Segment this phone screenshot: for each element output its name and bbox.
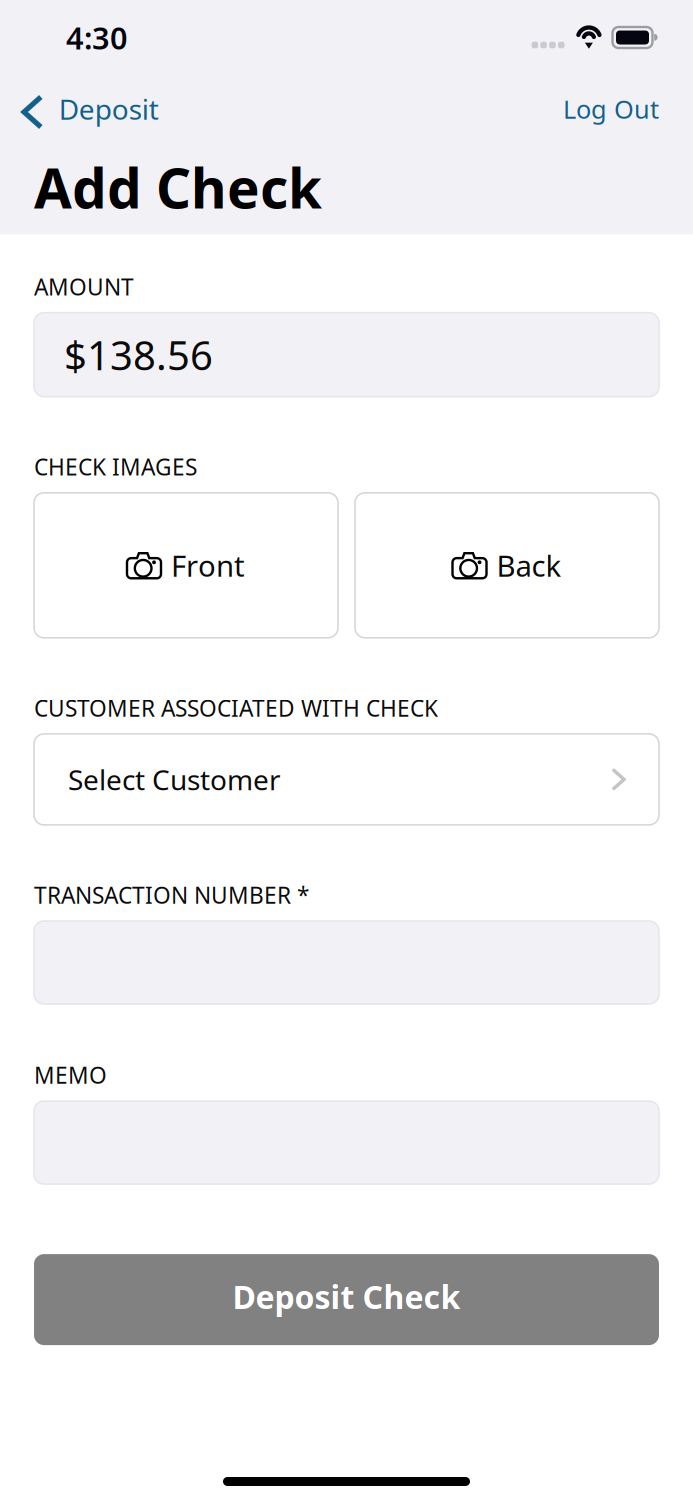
staticText: $138.56	[64, 328, 213, 381]
button[interactable]: Log Out	[563, 86, 693, 138]
staticText: Deposit Check	[232, 1275, 460, 1318]
staticText: Deposit	[59, 90, 159, 128]
staticText: MEMO	[34, 1060, 107, 1090]
staticText: Back	[496, 546, 561, 585]
staticText: Front	[171, 546, 245, 585]
staticText: CUSTOMER ASSOCIATED WITH CHECK	[34, 693, 438, 723]
button[interactable]: Select Customer	[34, 734, 659, 825]
staticText: TRANSACTION NUMBER *	[34, 880, 309, 910]
button[interactable]: Front	[34, 493, 338, 638]
button[interactable]: Deposit	[0, 84, 159, 140]
staticText: CHECK IMAGES	[34, 452, 197, 482]
button[interactable]: Deposit Check	[34, 1254, 659, 1345]
staticText: AMOUNT	[34, 272, 134, 302]
staticText: 4:30	[66, 17, 128, 58]
staticText: Add Check	[34, 151, 322, 224]
button[interactable]: Back	[355, 493, 659, 638]
staticText: Log Out	[563, 92, 659, 126]
staticText: Select Customer	[68, 761, 281, 798]
